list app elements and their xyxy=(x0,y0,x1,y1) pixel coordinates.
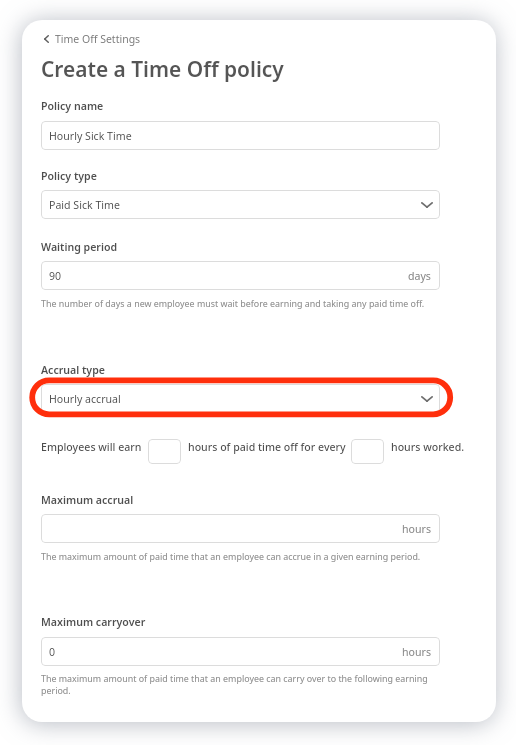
staticText: days xyxy=(408,269,431,283)
button[interactable]: hours xyxy=(41,514,440,543)
staticText: Time Off Settings xyxy=(55,32,141,46)
button[interactable]: 90 xyxy=(41,261,440,290)
staticText: The maximum amount of paid time that an … xyxy=(41,550,471,562)
staticText: Maximum carryover xyxy=(41,615,146,629)
staticText: Waiting period xyxy=(41,240,118,254)
staticText: Hourly accrual xyxy=(49,392,121,406)
button[interactable]: Hourly Sick Time xyxy=(41,121,440,150)
staticText: Policy name xyxy=(41,99,104,113)
staticText: hours xyxy=(402,645,431,659)
staticText: The maximum amount of paid time that an … xyxy=(41,672,441,697)
staticText: hours xyxy=(402,522,431,536)
staticText: Create a Time Off policy xyxy=(41,55,284,83)
button[interactable]: Back to Time Off Settings xyxy=(44,32,141,46)
staticText: The number of days a new employee must w… xyxy=(41,297,471,309)
staticText: hours of paid time off for every xyxy=(188,440,346,454)
button[interactable]: Hourly accrual xyxy=(41,384,440,413)
button[interactable]: hours input xyxy=(351,439,384,464)
button[interactable]: hours input xyxy=(148,439,181,464)
staticText: 0 xyxy=(49,645,56,659)
button[interactable]: 0 xyxy=(41,637,440,666)
button[interactable]: Paid Sick Time xyxy=(41,190,440,219)
staticText: Employees will earn xyxy=(41,440,142,454)
staticText: hours worked. xyxy=(391,440,465,454)
staticText: Paid Sick Time xyxy=(49,198,120,212)
staticText: Maximum accrual xyxy=(41,493,134,507)
staticText: Policy type xyxy=(41,169,97,183)
staticText: Hourly Sick Time xyxy=(49,129,132,143)
staticText: Accrual type xyxy=(41,363,105,377)
staticText: 90 xyxy=(49,269,62,283)
